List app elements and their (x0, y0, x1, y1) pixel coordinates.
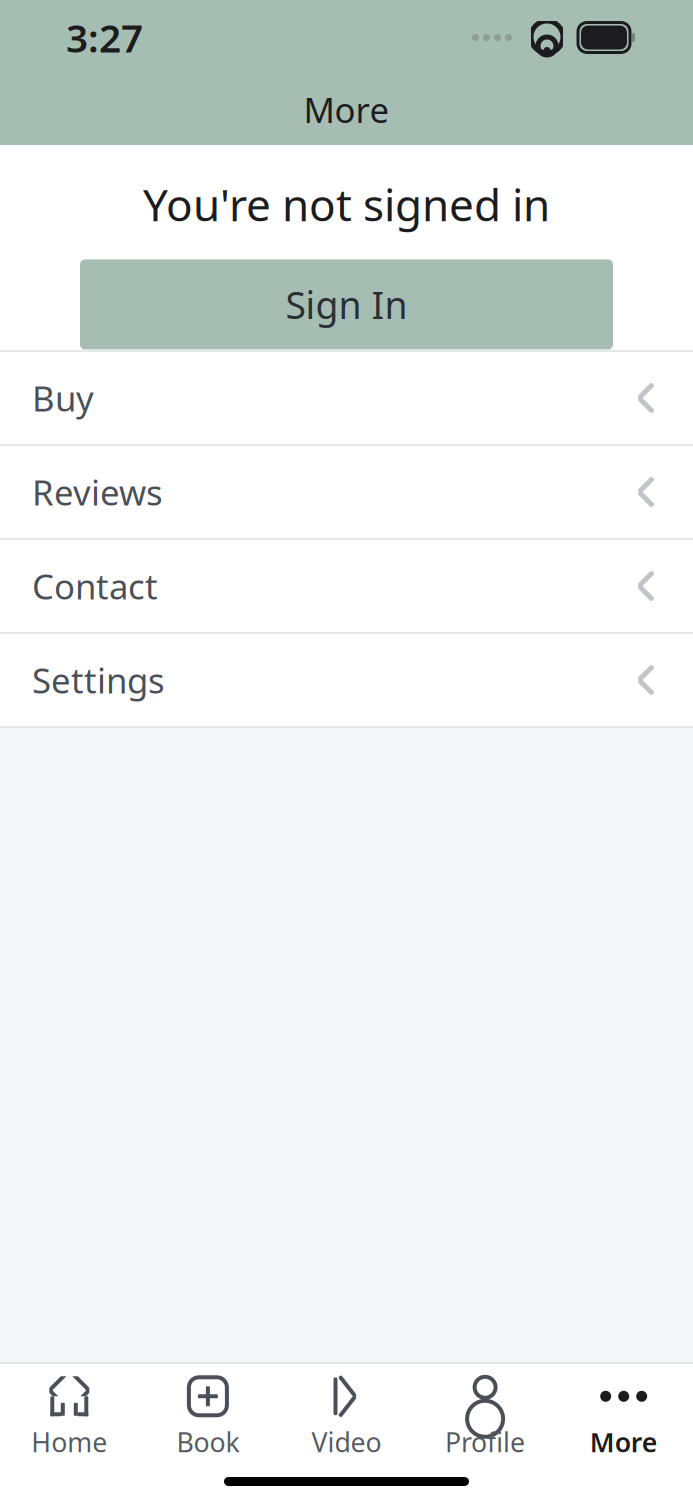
staticText: Sign In (285, 280, 407, 329)
button[interactable]: Book (139, 1380, 277, 1456)
staticText: Profile (445, 1424, 525, 1460)
button[interactable]: Settings (0, 634, 693, 728)
button[interactable]: Profile (416, 1380, 554, 1456)
staticText: Reviews (32, 469, 163, 515)
staticText: Home (31, 1424, 107, 1460)
button[interactable]: Sign In (80, 259, 613, 349)
button[interactable]: Buy (0, 352, 693, 446)
button[interactable]: Reviews (0, 446, 693, 540)
staticText: More (590, 1424, 658, 1460)
staticText: Buy (32, 375, 94, 421)
button[interactable]: Contact (0, 540, 693, 634)
staticText: Settings (32, 657, 165, 703)
button[interactable]: Home (0, 1380, 139, 1456)
staticText: Video (311, 1424, 381, 1460)
button[interactable]: Video (277, 1380, 416, 1456)
staticText: Book (176, 1424, 239, 1460)
staticText: More (303, 86, 389, 132)
staticText: You're not signed in (143, 175, 550, 233)
staticText: 3:27 (66, 12, 143, 63)
button[interactable]: More (554, 1380, 693, 1456)
staticText: Contact (32, 563, 158, 609)
